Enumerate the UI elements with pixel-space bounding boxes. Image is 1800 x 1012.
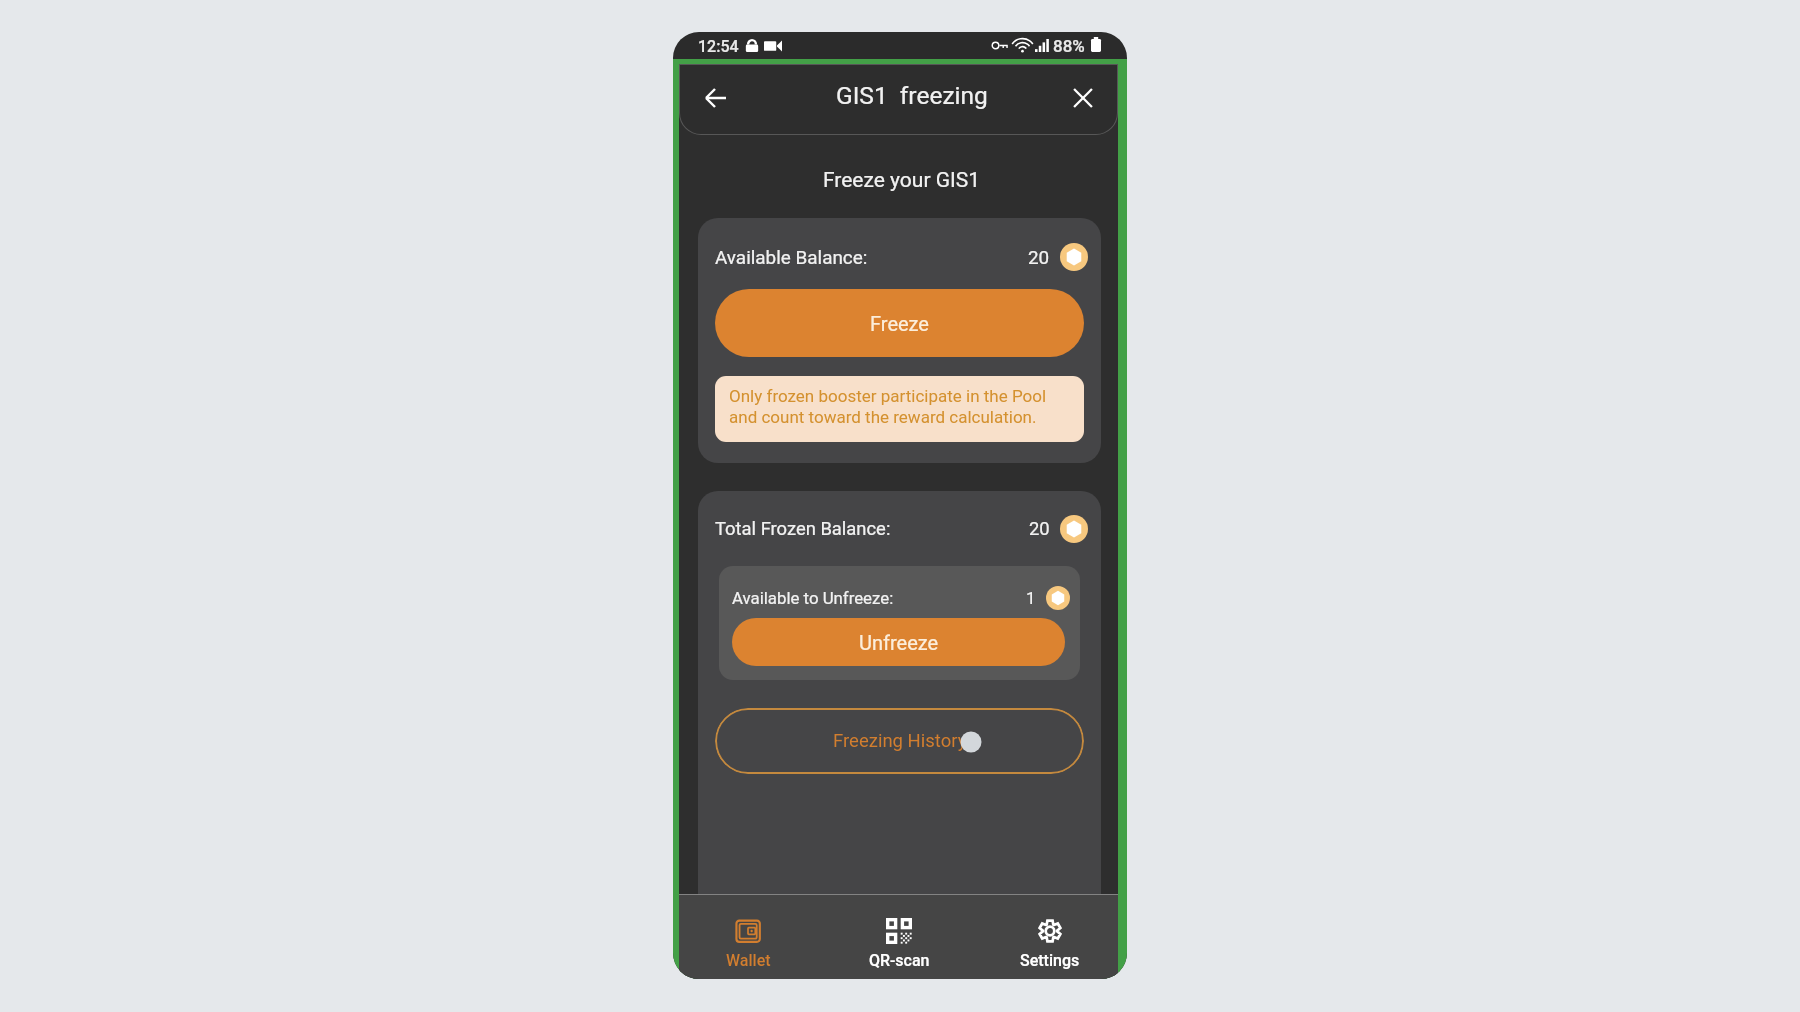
button[interactable]: Settings xyxy=(995,894,1105,979)
button[interactable]: Close xyxy=(1069,84,1097,112)
button[interactable]: Freezing History xyxy=(715,708,1084,774)
staticText: Settings xyxy=(1020,951,1080,970)
button[interactable]: Wallet xyxy=(693,894,803,979)
staticText: 1 xyxy=(1026,588,1036,608)
button[interactable]: Freeze xyxy=(715,289,1084,357)
button[interactable]: QR-scan xyxy=(844,894,954,979)
staticText: Unfreeze xyxy=(859,631,939,654)
staticText: Freeze your GIS1 xyxy=(682,168,1121,193)
staticText: 88% xyxy=(1053,36,1085,56)
staticText: Freezing History xyxy=(833,730,967,752)
staticText: 20 xyxy=(1028,246,1050,268)
staticText: 20 xyxy=(1029,518,1050,540)
staticText: Freeze xyxy=(870,312,929,335)
button[interactable]: Back xyxy=(701,83,731,113)
staticText: GIS1 freezing xyxy=(836,81,988,110)
staticText: Only frozen booster participate in the P… xyxy=(729,386,1074,427)
staticText: 12:54 xyxy=(698,37,739,56)
staticText: QR-scan xyxy=(869,951,930,970)
staticText: Total Frozen Balance: xyxy=(715,518,891,540)
staticText: Wallet xyxy=(726,951,771,970)
button[interactable]: Unfreeze xyxy=(732,618,1065,666)
staticText: Available to Unfreeze: xyxy=(732,588,894,608)
staticText: Available Balance: xyxy=(715,246,868,268)
